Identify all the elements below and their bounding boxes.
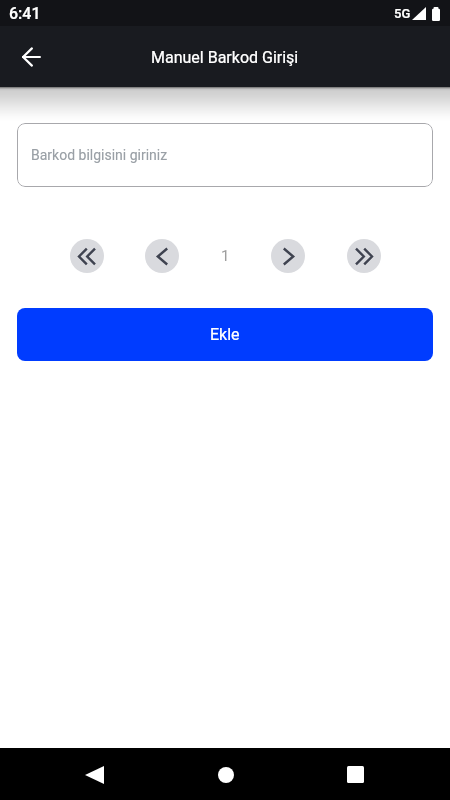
button[interactable]: Previous page	[145, 239, 179, 273]
button[interactable]: First page	[70, 239, 104, 273]
staticText: Barkod bilgisini giriniz	[31, 147, 168, 163]
button[interactable]: Recents	[331, 750, 380, 799]
staticText: Ekle	[210, 325, 240, 344]
button[interactable]: Back	[11, 37, 51, 77]
staticText: 1	[221, 247, 230, 265]
button[interactable]: Last page	[347, 239, 381, 273]
staticText: 6:41	[9, 4, 41, 23]
button[interactable]: Back	[70, 750, 119, 799]
staticText: Manuel Barkod Girişi	[151, 48, 299, 67]
staticText: 5G	[394, 6, 411, 21]
button[interactable]: Barkod bilgisini giriniz	[17, 123, 433, 187]
button[interactable]: Next page	[271, 239, 305, 273]
button[interactable]: Home	[201, 750, 250, 799]
button[interactable]: Ekle	[17, 308, 433, 361]
